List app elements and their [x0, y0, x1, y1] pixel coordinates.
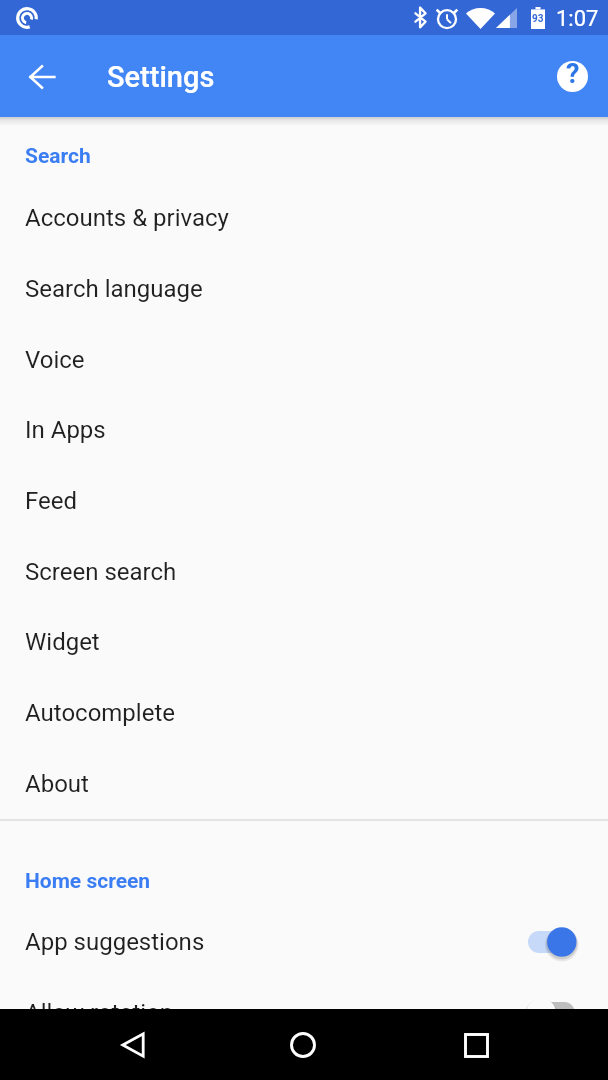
button[interactable]: In Apps: [0, 394, 608, 465]
staticText: Feed: [25, 487, 78, 515]
staticText: Allow rotation: [25, 999, 528, 1027]
button[interactable]: Navigate up: [14, 49, 70, 105]
staticText: In Apps: [25, 416, 106, 444]
button[interactable]: Widget: [0, 606, 608, 677]
button[interactable]: Search language: [0, 253, 608, 324]
button[interactable]: Accounts & privacy: [0, 182, 608, 253]
button[interactable]: Home: [271, 1013, 335, 1077]
button[interactable]: Recent apps: [444, 1013, 508, 1077]
staticText: Voice: [25, 346, 85, 374]
staticText: About: [25, 770, 89, 798]
staticText: App suggestions: [25, 928, 528, 956]
button[interactable]: App suggestions: [0, 906, 608, 977]
button[interactable]: Back: [101, 1013, 165, 1077]
staticText: Settings: [107, 60, 215, 94]
staticText: Search language: [25, 275, 203, 303]
staticText: Screen search: [25, 558, 177, 586]
button[interactable]: Help: [546, 50, 598, 102]
staticText: 93: [532, 13, 544, 25]
button[interactable]: Screen search: [0, 536, 608, 607]
button[interactable]: About: [0, 748, 608, 819]
staticText: ?: [566, 61, 580, 89]
button[interactable]: Voice: [0, 324, 608, 395]
staticText: Search: [25, 144, 91, 169]
staticText: 1:07: [556, 6, 599, 32]
staticText: Autocomplete: [25, 699, 175, 727]
button[interactable]: Allow rotation: [0, 977, 608, 1048]
staticText: Home screen: [25, 869, 151, 894]
staticText: Widget: [25, 628, 100, 656]
button[interactable]: Feed: [0, 465, 608, 536]
staticText: Accounts & privacy: [25, 204, 229, 232]
button[interactable]: Autocomplete: [0, 677, 608, 748]
